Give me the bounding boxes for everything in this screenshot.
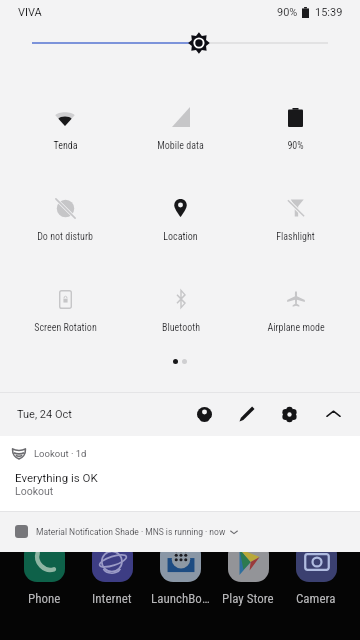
staticText: Everything is OK xyxy=(15,471,98,484)
button[interactable]: Mobile data xyxy=(123,93,238,184)
staticText: Tenda xyxy=(53,140,78,152)
button[interactable]: Tenda xyxy=(7,93,123,184)
staticText: Play Store xyxy=(222,591,274,606)
staticText: Lookout · 1d xyxy=(34,448,87,459)
button[interactable]: Material Notification Shade · MNS is run… xyxy=(15,525,238,538)
staticText: Airplane mode xyxy=(267,322,325,334)
button[interactable]: Play Store xyxy=(214,541,282,606)
button[interactable]: Location xyxy=(123,184,238,275)
staticText: Phone xyxy=(28,591,61,606)
staticText: Camera xyxy=(296,591,336,606)
staticText: Bluetooth xyxy=(162,322,200,334)
button[interactable]: Collapse xyxy=(322,403,344,425)
button[interactable]: Account xyxy=(193,403,215,425)
staticText: VIVA xyxy=(18,6,42,19)
button[interactable]: Airplane mode xyxy=(238,275,353,366)
staticText: 15:39 xyxy=(315,6,343,19)
button[interactable]: Lookout · 1d xyxy=(0,436,360,512)
button[interactable]: LaunchBo… xyxy=(146,541,214,606)
button[interactable]: Camera xyxy=(282,541,350,606)
button[interactable]: Internet xyxy=(78,541,146,606)
button[interactable]: Edit xyxy=(236,403,258,425)
staticText: Mobile data xyxy=(157,140,204,152)
staticText: 90% xyxy=(287,140,304,152)
staticText: Tue, 24 Oct xyxy=(17,408,72,421)
staticText: Do not disturb xyxy=(37,231,93,243)
staticText: Internet xyxy=(92,591,132,606)
staticText: Location xyxy=(163,231,198,243)
staticText: LaunchBo… xyxy=(151,591,210,606)
button[interactable]: Screen Rotation xyxy=(7,275,123,366)
button[interactable]: Phone xyxy=(10,541,78,606)
staticText: Lookout xyxy=(15,485,54,497)
button[interactable]: Do not disturb xyxy=(7,184,123,275)
button[interactable]: Settings xyxy=(278,403,300,425)
staticText: Material Notification Shade · MNS is run… xyxy=(36,527,226,537)
button[interactable]: 90% xyxy=(238,93,353,184)
button[interactable]: Flashlight xyxy=(238,184,353,275)
button[interactable]: Bluetooth xyxy=(123,275,238,366)
staticText: 90% xyxy=(277,6,298,19)
button[interactable]: Brightness xyxy=(0,31,360,55)
staticText: Screen Rotation xyxy=(34,322,97,334)
staticText: Flashlight xyxy=(276,231,315,243)
